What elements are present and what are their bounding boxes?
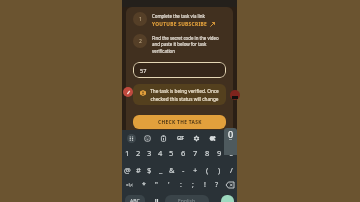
staticText: (: [206, 165, 209, 175]
button[interactable]: ?: [211, 177, 223, 192]
button[interactable]: (: [201, 162, 213, 177]
staticText: 9: [217, 148, 222, 158]
staticText: The task is being verified. Once checked…: [149, 88, 220, 103]
staticText: #: [136, 165, 141, 175]
button[interactable]: Themes: [204, 130, 220, 146]
button[interactable]: ": [150, 177, 163, 192]
staticText: *: [142, 180, 146, 190]
staticText: !: [204, 180, 206, 190]
button[interactable]: _: [155, 162, 166, 177]
button[interactable]: @: [122, 162, 133, 177]
staticText: English: [178, 198, 196, 202]
staticText: _: [159, 165, 163, 175]
staticText: 6: [181, 148, 186, 158]
staticText: Complete the task via link: [152, 13, 205, 19]
staticText: 8: [205, 148, 210, 158]
button[interactable]: #: [133, 162, 144, 177]
button[interactable]: -: [177, 162, 189, 177]
button[interactable]: 7: [189, 145, 201, 160]
button[interactable]: $: [144, 162, 155, 177]
staticText: -: [182, 165, 185, 175]
staticText: 4: [158, 148, 163, 158]
staticText: 2: [139, 38, 142, 45]
staticText: ): [218, 165, 221, 175]
button[interactable]: CHECK THE TASK: [133, 115, 226, 129]
button[interactable]: +: [189, 162, 201, 177]
button[interactable]: English: [165, 195, 209, 202]
button[interactable]: 6: [177, 145, 189, 160]
button[interactable]: ): [213, 162, 225, 177]
button[interactable]: Toolbar: [123, 130, 139, 146]
button[interactable]: !: [199, 177, 211, 192]
staticText: 1: [139, 16, 142, 23]
staticText: +: [193, 165, 198, 175]
button[interactable]: YOUTUBE SUBSCRIBE: [152, 21, 215, 28]
staticText: &: [169, 165, 175, 175]
button[interactable]: Voice input: [150, 195, 162, 202]
button[interactable]: Stickers: [139, 130, 155, 146]
button[interactable]: Notifications: [230, 90, 240, 100]
button[interactable]: Clipboard: [155, 130, 171, 146]
staticText: GIF: [177, 135, 184, 141]
staticText: 0: [228, 128, 234, 140]
staticText: CHECK THE TASK: [158, 119, 202, 126]
button[interactable]: 9: [213, 145, 225, 160]
button[interactable]: Settings: [188, 130, 204, 146]
staticText: =\<: [126, 182, 133, 188]
button[interactable]: ABC: [125, 195, 145, 202]
staticText: 0: [229, 148, 234, 158]
staticText: ': [168, 180, 170, 190]
button[interactable]: &: [166, 162, 177, 177]
button[interactable]: 3: [144, 145, 155, 160]
button[interactable]: Edit: [123, 87, 133, 97]
staticText: /: [230, 165, 233, 175]
button[interactable]: ;: [187, 177, 199, 192]
staticText: $: [147, 165, 152, 175]
button[interactable]: 0: [225, 145, 237, 160]
button[interactable]: Backspace: [223, 177, 237, 192]
button[interactable]: 8: [201, 145, 213, 160]
button[interactable]: 2: [133, 145, 144, 160]
button[interactable]: 57: [133, 62, 226, 78]
staticText: @: [124, 165, 131, 175]
staticText: 57: [140, 67, 147, 74]
button[interactable]: *: [137, 177, 150, 192]
button[interactable]: =\<: [122, 177, 137, 192]
button[interactable]: Enter: [221, 195, 234, 202]
staticText: YOUTUBE SUBSCRIBE: [152, 21, 208, 28]
staticText: 7: [193, 148, 198, 158]
staticText: 3: [147, 148, 152, 158]
staticText: 2: [136, 148, 141, 158]
button[interactable]: /: [225, 162, 237, 177]
button[interactable]: ': [163, 177, 175, 192]
button[interactable]: 1: [122, 145, 133, 160]
button[interactable]: :: [175, 177, 187, 192]
button[interactable]: 5: [166, 145, 177, 160]
button[interactable]: GIF: [172, 130, 188, 146]
staticText: 5: [169, 148, 174, 158]
staticText: ;: [192, 180, 194, 190]
button[interactable]: 4: [155, 145, 166, 160]
staticText: ": [155, 180, 158, 190]
staticText: ABC: [130, 198, 140, 202]
staticText: ?: [215, 180, 219, 190]
staticText: 1: [125, 148, 130, 158]
staticText: :: [180, 180, 182, 190]
staticText: Find the secret code in the video and pa…: [152, 35, 226, 55]
